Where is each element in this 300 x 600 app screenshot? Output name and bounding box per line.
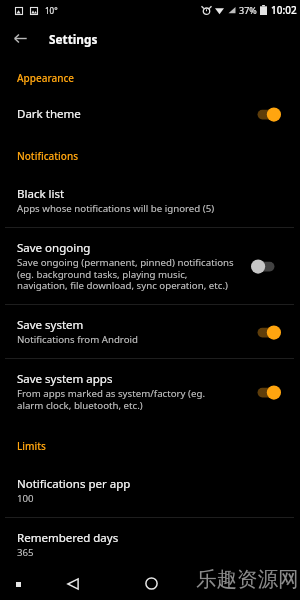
staticText: 100 (17, 492, 34, 505)
staticText: Save system (17, 317, 84, 333)
staticText: 365 (17, 546, 34, 559)
staticText: 10° (45, 5, 58, 16)
staticText: Limits (17, 439, 46, 453)
staticText: 37% (239, 4, 257, 16)
button[interactable]: Back (7, 25, 34, 52)
staticText: Black list (17, 186, 65, 202)
staticText: Save ongoing (17, 240, 91, 256)
button[interactable]: Dark theme (0, 93, 300, 135)
button[interactable]: Back (61, 572, 84, 595)
staticText: From apps marked as system/factory (eg. … (17, 387, 205, 412)
staticText: Apps whose notifications will be ignored… (17, 202, 215, 215)
staticText: Notifications per app (17, 476, 131, 492)
button[interactable]: Home (140, 572, 163, 595)
button[interactable]: Save system (0, 305, 300, 358)
button[interactable]: Black list (0, 174, 300, 227)
staticText: Notifications (17, 149, 79, 163)
staticText: 乐趣资源网 (196, 566, 299, 592)
button[interactable]: Save ongoing (0, 228, 300, 304)
staticText: Dark theme (17, 106, 81, 122)
staticText: Remembered days (17, 530, 119, 546)
button[interactable]: Recent apps (7, 573, 30, 596)
button[interactable]: Notifications per app (0, 464, 300, 517)
button[interactable]: Save system apps (0, 359, 300, 424)
staticText: 10:02 (271, 3, 297, 17)
staticText: Appearance (17, 71, 75, 85)
staticText: Notifications from Android (17, 333, 138, 346)
staticText: Save system apps (17, 371, 113, 387)
staticText: Settings (49, 31, 98, 47)
button[interactable]: Remembered days (0, 518, 300, 571)
staticText: Save ongoing (permanent, pinned) notific… (17, 256, 234, 292)
